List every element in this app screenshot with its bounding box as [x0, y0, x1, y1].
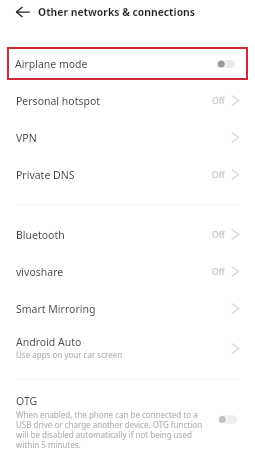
- staticText: VPN: [16, 131, 37, 145]
- staticText: Off: [212, 95, 225, 107]
- staticText: When enabled, the phone can be connected…: [16, 409, 211, 451]
- button[interactable]: vivoshare: [0, 253, 255, 290]
- staticText: OTG: [16, 394, 38, 408]
- button[interactable]: Bluetooth: [0, 216, 255, 253]
- button[interactable]: Back: [11, 0, 35, 24]
- button[interactable]: Personal hotspot: [0, 82, 255, 119]
- staticText: Android Auto: [16, 335, 82, 349]
- button[interactable]: Android Auto: [0, 327, 255, 369]
- staticText: Private DNS: [16, 168, 75, 182]
- button[interactable]: VPN: [0, 119, 255, 156]
- staticText: Off: [212, 266, 225, 278]
- staticText: Use apps on your car screen: [16, 349, 123, 360]
- button[interactable]: OTG toggle: [217, 414, 237, 425]
- button[interactable]: Private DNS: [0, 156, 255, 193]
- staticText: Other networks & connections: [38, 5, 195, 19]
- staticText: Smart Mirroring: [16, 302, 96, 316]
- staticText: Personal hotspot: [16, 94, 101, 108]
- staticText: Off: [212, 169, 225, 181]
- staticText: Off: [212, 229, 225, 241]
- button[interactable]: Smart Mirroring: [0, 290, 255, 327]
- button[interactable]: Airplane mode: [7, 47, 248, 80]
- staticText: Airplane mode: [15, 57, 216, 71]
- staticText: Bluetooth: [16, 228, 65, 242]
- staticText: vivoshare: [16, 265, 64, 279]
- button[interactable]: Airplane mode toggle: [216, 59, 235, 69]
- button[interactable]: OTG: [0, 394, 255, 451]
